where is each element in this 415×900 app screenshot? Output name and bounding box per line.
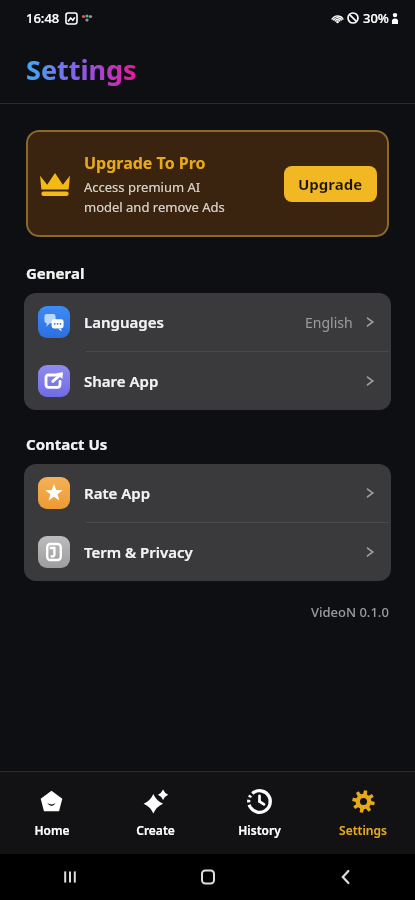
button[interactable]: History: [207, 772, 311, 854]
staticText: 16:48: [26, 9, 60, 27]
staticText: English: [305, 313, 353, 332]
staticText: General: [26, 263, 85, 283]
staticText: Settings: [339, 822, 387, 838]
staticText: Upgrade To Pro: [84, 152, 206, 174]
staticText: Languages: [84, 312, 305, 332]
staticText: VideoN 0.1.0: [311, 603, 389, 621]
staticText: Access premium AI: [84, 178, 201, 196]
staticText: Contact Us: [26, 434, 108, 454]
button[interactable]: Upgrade To Pro: [26, 130, 389, 237]
staticText: Settings: [26, 51, 137, 88]
staticText: Upgrade: [298, 174, 363, 194]
staticText: 30%: [363, 9, 389, 27]
button[interactable]: Rate App: [24, 464, 391, 522]
button[interactable]: Settings: [311, 772, 415, 854]
button[interactable]: Term & Privacy: [24, 523, 391, 581]
staticText: History: [238, 822, 281, 838]
button[interactable]: Languages: [24, 293, 391, 351]
button[interactable]: Home: [0, 772, 103, 854]
staticText: Create: [136, 822, 175, 838]
staticText: Term & Privacy: [84, 542, 363, 562]
staticText: Rate App: [84, 483, 363, 503]
button[interactable]: Upgrade: [284, 166, 377, 202]
staticText: Home: [34, 822, 70, 838]
button[interactable]: Share App: [24, 352, 391, 410]
button[interactable]: Create: [103, 772, 207, 854]
staticText: Share App: [84, 371, 363, 391]
staticText: model and remove Ads: [84, 198, 225, 216]
